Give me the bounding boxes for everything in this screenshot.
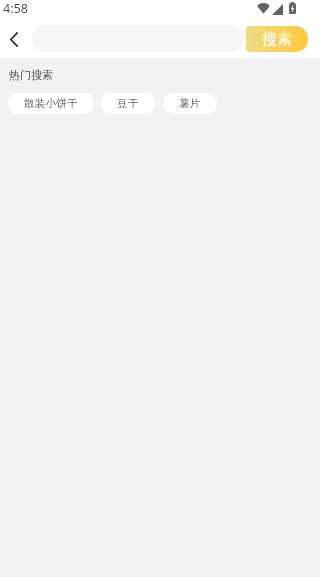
button[interactable]: 豆干: [101, 93, 155, 114]
staticText: 搜索: [262, 30, 292, 49]
button[interactable]: 散装小饼干: [8, 93, 94, 114]
button[interactable]: 搜索: [246, 26, 308, 52]
staticText: 薯片: [179, 97, 201, 110]
staticText: 豆干: [117, 97, 139, 110]
staticText: 散装小饼干: [24, 97, 78, 110]
button[interactable]: Back: [0, 25, 32, 52]
staticText: 4:58: [3, 0, 28, 16]
button[interactable]: 薯片: [163, 93, 217, 114]
staticText: 热门搜索: [9, 68, 54, 82]
